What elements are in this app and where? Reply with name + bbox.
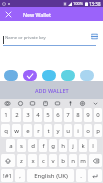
button[interactable]: 2	[12, 108, 21, 122]
button[interactable]: z	[17, 154, 26, 167]
button[interactable]: h	[59, 139, 67, 152]
staticText: k	[81, 142, 85, 150]
staticText: 3	[26, 111, 30, 119]
staticText: .	[80, 172, 82, 180]
button[interactable]: q	[1, 124, 10, 137]
button[interactable]: r	[34, 124, 42, 137]
button[interactable]: 0	[94, 108, 102, 122]
button[interactable]: c	[39, 154, 47, 167]
button[interactable]: l	[89, 139, 97, 152]
staticText: i	[77, 127, 79, 135]
button[interactable]: Shift	[1, 154, 15, 167]
staticText: f	[42, 142, 45, 150]
staticText: h	[61, 142, 65, 150]
staticText: 5	[46, 111, 50, 119]
button[interactable]: p	[94, 124, 102, 137]
staticText: !#1	[3, 172, 12, 180]
button[interactable]: n	[69, 154, 77, 167]
staticText: r	[37, 127, 40, 135]
staticText: ,	[19, 172, 21, 180]
button[interactable]: Keyboard tool 5	[66, 99, 75, 107]
staticText: u	[66, 127, 70, 135]
button[interactable]: Choose avatar	[61, 70, 75, 81]
staticText: 2	[15, 111, 19, 119]
staticText: o	[86, 127, 90, 135]
staticText: 100%	[73, 1, 84, 6]
staticText: m	[80, 157, 86, 165]
button[interactable]: .	[76, 169, 86, 182]
button[interactable]: 3	[23, 108, 32, 122]
button[interactable]: x	[28, 154, 37, 167]
button[interactable]: Enter	[88, 169, 102, 182]
button[interactable]: Keyboard tool 3	[41, 99, 50, 107]
staticText: s	[20, 142, 23, 150]
button[interactable]: 1	[1, 108, 10, 122]
staticText: 6	[56, 111, 60, 119]
staticText: 1	[4, 111, 8, 119]
button[interactable]: i	[74, 124, 82, 137]
staticText: t	[47, 127, 50, 135]
staticText: e	[26, 127, 30, 135]
button[interactable]: 6	[54, 108, 62, 122]
button[interactable]: Close	[0, 7, 16, 21]
button[interactable]: Backspace	[89, 154, 102, 167]
staticText: x	[31, 157, 35, 165]
button[interactable]: 7	[64, 108, 72, 122]
staticText: j	[72, 142, 74, 150]
button[interactable]: ,	[15, 169, 25, 182]
button[interactable]: d	[28, 139, 37, 152]
button[interactable]: Choose avatar	[23, 70, 37, 81]
button[interactable]: Keyboard tool 1	[16, 99, 25, 107]
button[interactable]: j	[69, 139, 77, 152]
button[interactable]: f	[39, 139, 47, 152]
button[interactable]: Scan QR code	[89, 31, 99, 41]
button[interactable]: Keyboard tool 4	[53, 99, 62, 107]
button[interactable]: g	[49, 139, 57, 152]
staticText: 9	[86, 111, 90, 119]
button[interactable]: English (UK)	[27, 169, 74, 182]
button[interactable]: k	[79, 139, 87, 152]
staticText: 7	[66, 111, 70, 119]
button[interactable]: Keyboard tool 0	[3, 99, 12, 107]
button[interactable]: ADD WALLET	[0, 81, 103, 99]
staticText: English (UK)	[34, 172, 68, 180]
button[interactable]: Choose avatar	[80, 70, 94, 81]
staticText: y	[56, 127, 60, 135]
staticText: 8	[76, 111, 80, 119]
button[interactable]: t	[44, 124, 52, 137]
button[interactable]: u	[64, 124, 72, 137]
button[interactable]: e	[23, 124, 32, 137]
button[interactable]: 8	[74, 108, 82, 122]
staticText: a	[9, 142, 13, 150]
staticText: Name or private key	[5, 34, 46, 40]
button[interactable]: m	[79, 154, 87, 167]
button[interactable]: 4	[34, 108, 42, 122]
staticText: d	[31, 142, 35, 150]
staticText: 0	[96, 111, 100, 119]
staticText: ADD WALLET	[35, 87, 69, 94]
staticText: p	[96, 127, 100, 135]
staticText: l	[92, 142, 94, 150]
staticText: v	[51, 157, 55, 165]
button[interactable]: !#1	[1, 169, 13, 182]
button[interactable]: Keyboard tool 7	[91, 99, 100, 107]
staticText: b	[61, 157, 65, 165]
button[interactable]: v	[49, 154, 57, 167]
button[interactable]: o	[84, 124, 92, 137]
button[interactable]: b	[59, 154, 67, 167]
button[interactable]: Choose avatar	[42, 70, 56, 81]
staticText: g	[51, 142, 55, 150]
button[interactable]: y	[54, 124, 62, 137]
staticText: z	[20, 157, 23, 165]
button[interactable]: 5	[44, 108, 52, 122]
staticText: c	[42, 157, 45, 165]
button[interactable]: a	[6, 139, 15, 152]
button[interactable]: s	[17, 139, 26, 152]
button[interactable]: Keyboard tool 6	[78, 99, 87, 107]
staticText: New Wallet	[23, 11, 51, 18]
button[interactable]: Choose avatar	[4, 70, 18, 81]
button[interactable]: Keyboard tool 2	[28, 99, 37, 107]
button[interactable]: w	[12, 124, 21, 137]
staticText: w	[14, 127, 19, 135]
button[interactable]: 9	[84, 108, 92, 122]
